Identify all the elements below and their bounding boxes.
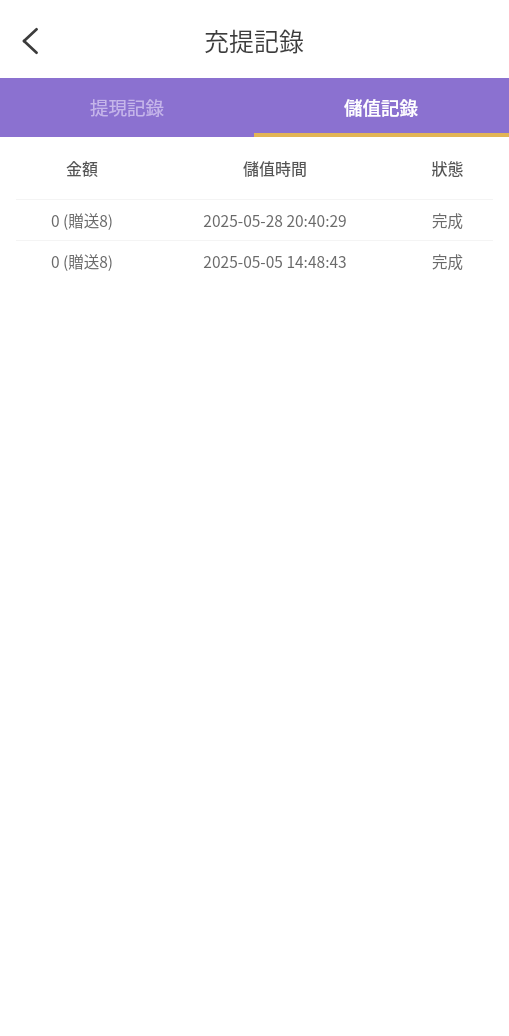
staticText: 2025-05-28 20:40:29 <box>164 209 386 231</box>
staticText: 2025-05-05 14:48:43 <box>164 250 386 272</box>
staticText: 狀態 <box>386 156 509 179</box>
button[interactable]: 0 (贈送8) <box>0 200 509 240</box>
button[interactable]: 0 (贈送8) <box>0 241 509 281</box>
staticText: 完成 <box>386 209 509 231</box>
button[interactable]: 提現記錄 <box>0 78 254 137</box>
staticText: 金額 <box>0 156 164 179</box>
button[interactable]: 儲值記錄 <box>254 78 509 137</box>
staticText: 0 (贈送8) <box>0 209 164 231</box>
staticText: 完成 <box>386 250 509 272</box>
staticText: 充提記錄 <box>204 22 305 58</box>
staticText: 儲值時間 <box>164 156 386 179</box>
staticText: 提現記錄 <box>90 94 165 121</box>
button[interactable]: Back <box>4 18 50 64</box>
staticText: 儲值記錄 <box>344 94 419 121</box>
staticText: 0 (贈送8) <box>0 250 164 272</box>
